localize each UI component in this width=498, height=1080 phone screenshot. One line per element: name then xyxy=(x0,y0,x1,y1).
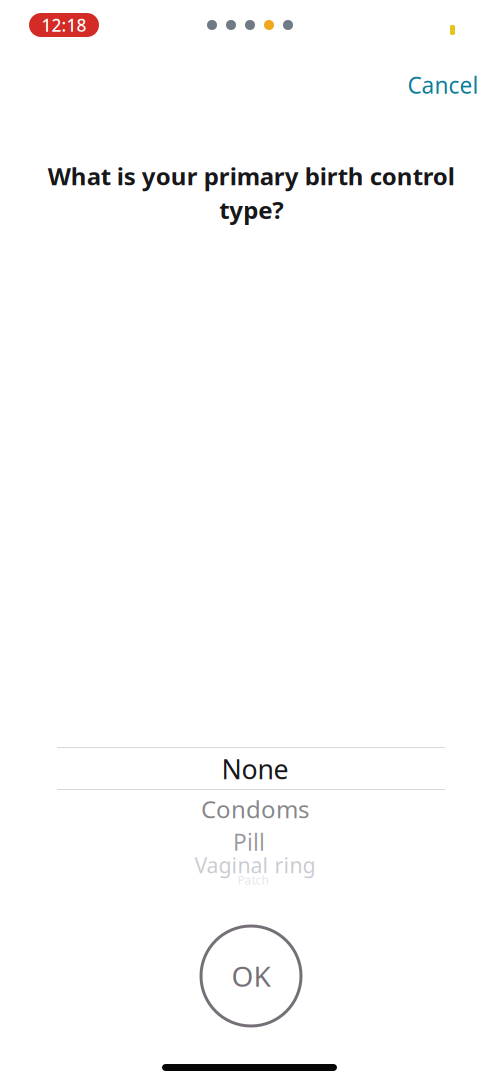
button[interactable]: Pill xyxy=(0,831,498,853)
staticText: Cancel xyxy=(407,70,478,100)
staticText: Vaginal ring xyxy=(194,851,315,879)
button[interactable]: Cancel xyxy=(388,63,498,107)
button[interactable]: Condoms xyxy=(6,797,498,821)
staticText: Patch xyxy=(237,872,268,888)
button[interactable]: OK xyxy=(201,926,301,1026)
staticText: Pill xyxy=(233,827,265,857)
staticText: Condoms xyxy=(201,793,309,825)
button[interactable]: Vaginal ring xyxy=(6,855,498,875)
staticText: OK xyxy=(231,957,270,995)
button[interactable]: Patch xyxy=(4,873,498,887)
staticText: None xyxy=(221,751,288,787)
staticText: What is your primary birth control type? xyxy=(47,160,454,226)
button[interactable]: None xyxy=(6,756,498,782)
staticText: 12:18 xyxy=(41,13,86,36)
